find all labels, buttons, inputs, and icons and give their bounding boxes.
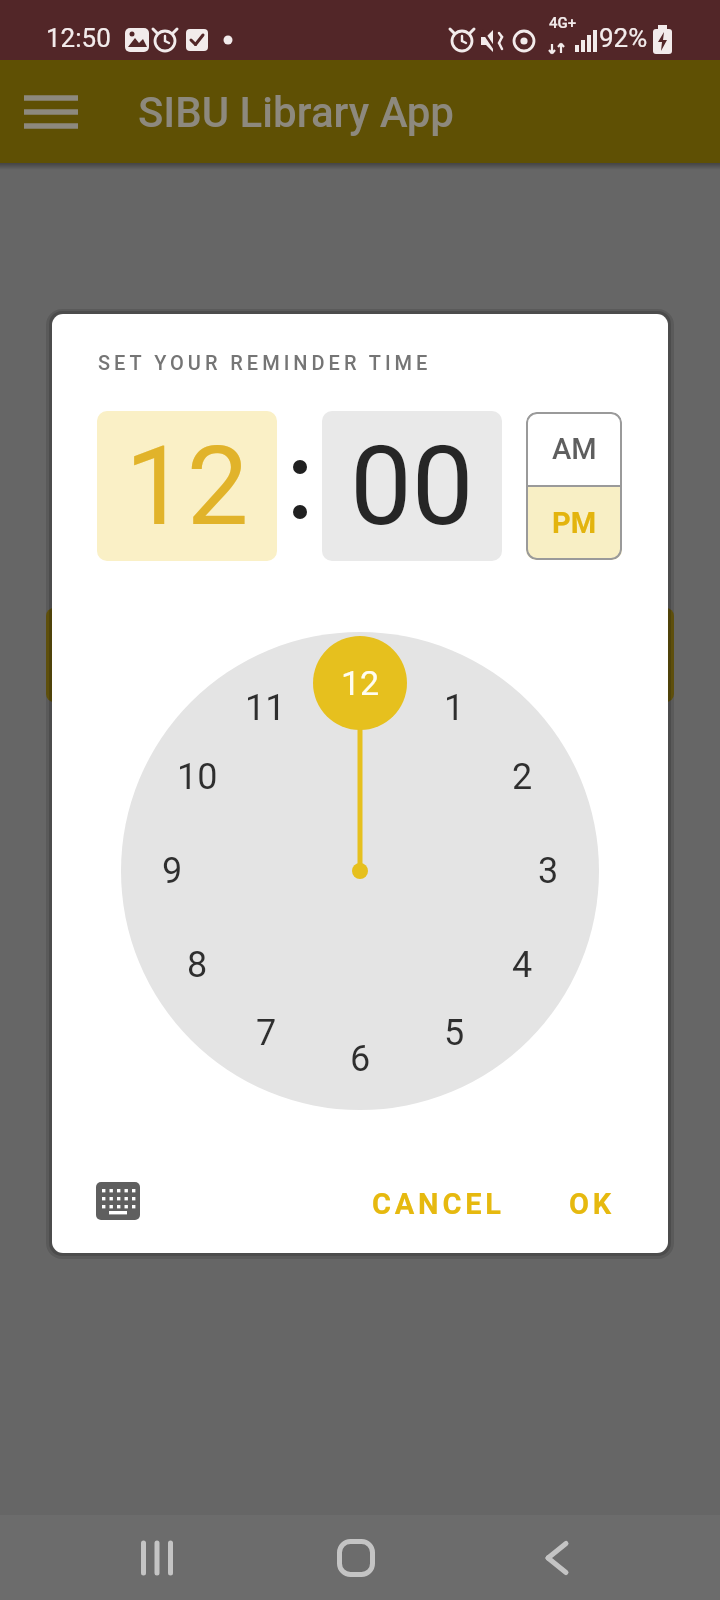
staticText: CANCEL bbox=[372, 1187, 505, 1221]
staticText: 4G+ bbox=[549, 14, 577, 32]
staticText: SIBU Library App bbox=[138, 88, 454, 136]
staticText: 7 bbox=[256, 1012, 277, 1054]
staticText: OK bbox=[569, 1187, 616, 1221]
button[interactable]: 00 bbox=[322, 411, 502, 561]
button[interactable]: AM bbox=[526, 412, 622, 486]
staticText: 1 bbox=[444, 687, 465, 729]
staticText: 8 bbox=[187, 944, 208, 986]
button[interactable] bbox=[117, 1515, 197, 1600]
button[interactable]: PM bbox=[526, 486, 622, 560]
button[interactable]: CANCEL bbox=[352, 1179, 524, 1229]
button[interactable] bbox=[16, 82, 86, 142]
staticText: 12 bbox=[125, 422, 249, 551]
button[interactable]: OK bbox=[532, 1179, 652, 1229]
button[interactable]: 12 bbox=[97, 411, 277, 561]
staticText: 9 bbox=[162, 850, 183, 892]
staticText: 11 bbox=[245, 687, 286, 729]
staticText: 12 bbox=[341, 663, 380, 703]
staticText: PM bbox=[552, 506, 597, 540]
button[interactable] bbox=[517, 1515, 597, 1600]
staticText: 3 bbox=[538, 850, 559, 892]
staticText: SET YOUR REMINDER TIME bbox=[98, 351, 432, 374]
staticText: 4 bbox=[512, 944, 533, 986]
staticText: 00 bbox=[350, 422, 474, 551]
staticText: 6 bbox=[350, 1038, 371, 1080]
staticText: AM bbox=[552, 432, 597, 466]
button[interactable] bbox=[316, 1515, 396, 1600]
staticText: 10 bbox=[177, 756, 218, 798]
staticText: 2 bbox=[512, 756, 533, 798]
button[interactable] bbox=[82, 1169, 154, 1233]
staticText: 12:50 bbox=[46, 23, 111, 53]
staticText: 5 bbox=[444, 1012, 465, 1054]
staticText: 92% bbox=[599, 23, 648, 53]
